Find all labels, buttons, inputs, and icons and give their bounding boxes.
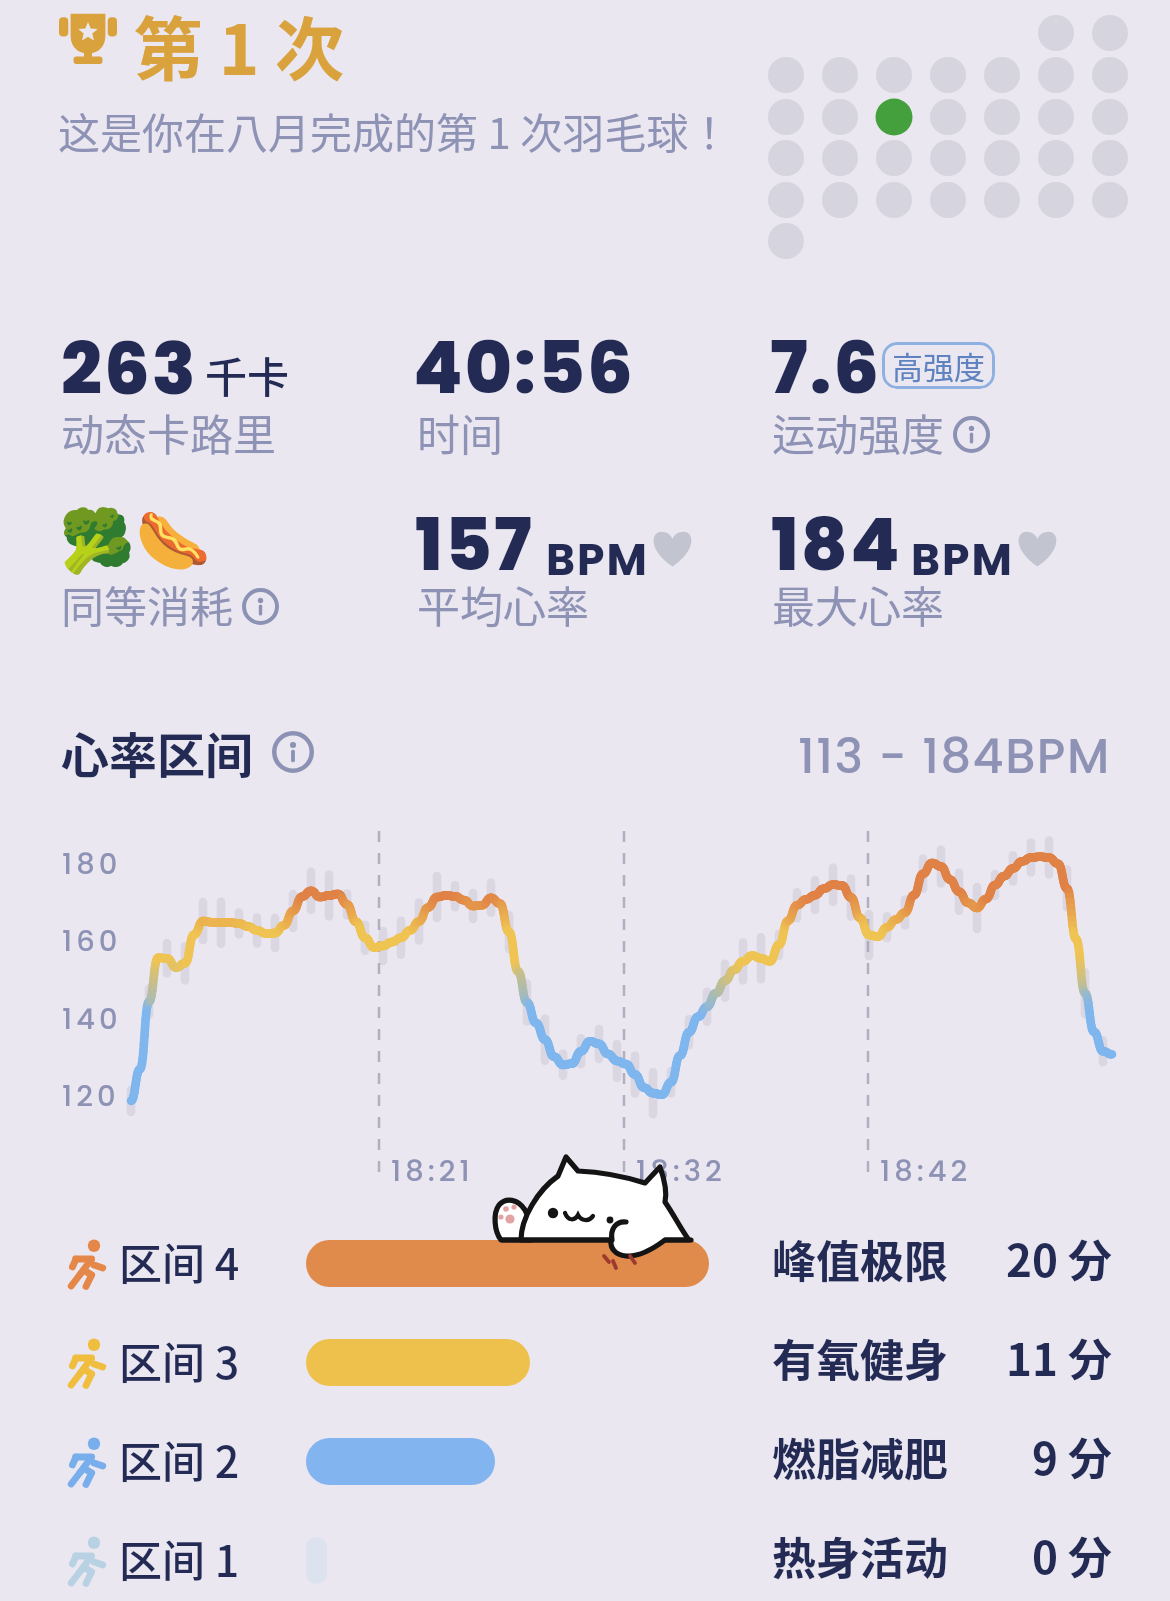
staticText: 184 bbox=[771, 494, 902, 595]
staticText: 140 bbox=[62, 999, 122, 1040]
button[interactable]: 40:56 bbox=[413, 317, 635, 418]
button[interactable]: 动态卡路里 bbox=[61, 401, 276, 463]
button[interactable]: 第 1 次 bbox=[59, 12, 345, 112]
staticText: 18:32 bbox=[636, 1151, 726, 1192]
staticText: 时间 bbox=[417, 401, 503, 463]
button[interactable]: More information bbox=[272, 731, 314, 773]
button[interactable]: 263 bbox=[61, 318, 198, 419]
staticText: 心率区间 bbox=[61, 717, 254, 787]
staticText: 157 bbox=[415, 494, 534, 595]
button[interactable]: 7.6 bbox=[770, 317, 882, 418]
staticText: 180 bbox=[62, 844, 122, 885]
other: Zone 2 bbox=[66, 1436, 106, 1486]
button[interactable]: 心率区间 bbox=[61, 717, 314, 787]
staticText: 🥦🌭 bbox=[59, 505, 211, 576]
staticText: 区间 1 bbox=[119, 1527, 240, 1589]
other: Zone 1 bbox=[66, 1535, 106, 1585]
button[interactable] bbox=[56, 1416, 1114, 1508]
button[interactable] bbox=[56, 1515, 1114, 1601]
staticText: 千卡 bbox=[205, 344, 290, 405]
button[interactable]: 高强度 bbox=[892, 343, 985, 388]
staticText: 区间 2 bbox=[119, 1428, 240, 1490]
button[interactable]: 157 bbox=[415, 494, 534, 595]
button[interactable]: 平均心率 bbox=[417, 573, 589, 635]
staticText: 40:56 bbox=[413, 317, 635, 418]
staticText: BPM bbox=[546, 529, 649, 591]
button[interactable] bbox=[56, 1218, 1114, 1310]
other: Zone 3 bbox=[66, 1337, 106, 1387]
staticText: 峰值极限 bbox=[772, 1227, 948, 1291]
button[interactable]: 184 bbox=[771, 494, 902, 595]
staticText: 同等消耗 bbox=[61, 573, 233, 635]
staticText: 18:21 bbox=[391, 1151, 474, 1192]
staticText: 区间 4 bbox=[119, 1230, 240, 1292]
button[interactable]: More information bbox=[953, 416, 990, 453]
staticText: 平均心率 bbox=[417, 573, 589, 635]
staticText: 20 分 bbox=[962, 1226, 1112, 1290]
staticText: 高强度 bbox=[892, 343, 985, 388]
button[interactable]: Monthly activity calendar bbox=[763, 8, 1128, 262]
staticText: 运动强度 bbox=[772, 401, 944, 463]
button[interactable]: More information bbox=[242, 588, 279, 625]
button[interactable]: 最大心率 bbox=[772, 573, 944, 635]
button[interactable] bbox=[56, 1317, 1114, 1409]
staticText: 7.6 bbox=[770, 317, 882, 418]
staticText: 9 分 bbox=[962, 1424, 1112, 1488]
staticText: 11 分 bbox=[962, 1325, 1112, 1389]
other: Zone 4 bbox=[66, 1238, 106, 1288]
staticText: 燃脂减肥 bbox=[772, 1425, 948, 1489]
staticText: BPM bbox=[911, 529, 1014, 591]
staticText: 113 - 184BPM bbox=[798, 723, 1111, 790]
staticText: 区间 3 bbox=[119, 1329, 240, 1391]
staticText: 0 分 bbox=[962, 1523, 1112, 1587]
staticText: 动态卡路里 bbox=[61, 401, 276, 463]
staticText: 263 bbox=[61, 318, 198, 419]
staticText: 有氧健身 bbox=[772, 1326, 948, 1390]
button[interactable]: 运动强度 bbox=[772, 401, 990, 463]
button[interactable]: 同等消耗 bbox=[61, 573, 279, 635]
other: Cat sticker bbox=[0, 0, 1170, 1601]
button[interactable]: 🥦🌭 bbox=[59, 505, 211, 576]
staticText: 第 1 次 bbox=[134, 0, 345, 95]
staticText: 18:42 bbox=[880, 1151, 972, 1192]
staticText: 160 bbox=[62, 921, 122, 962]
staticText: 这是你在八月完成的第 1 次羽毛球！ bbox=[58, 100, 731, 161]
staticText: 最大心率 bbox=[772, 573, 944, 635]
staticText: 热身活动 bbox=[772, 1524, 948, 1588]
button[interactable]: 时间 bbox=[417, 401, 503, 463]
staticText: 120 bbox=[62, 1076, 120, 1117]
